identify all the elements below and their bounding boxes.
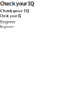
staticText: Beginner (0, 25, 14, 29)
staticText: Check your IQ (0, 14, 21, 18)
staticText: Check your IQ (0, 0, 34, 7)
staticText: Beginner (0, 19, 16, 24)
staticText: Check your IQ (0, 8, 29, 13)
